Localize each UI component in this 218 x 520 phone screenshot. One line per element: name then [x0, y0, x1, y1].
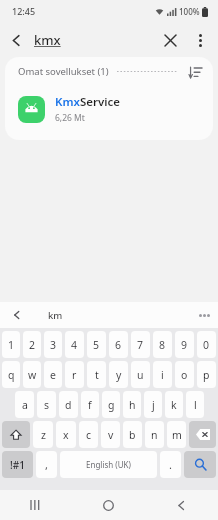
staticText: 9	[181, 338, 188, 352]
staticText: m	[172, 428, 182, 442]
staticText: 0	[203, 338, 210, 352]
button[interactable]: u	[131, 361, 150, 388]
staticText: 6	[115, 338, 122, 352]
staticText: !#1	[10, 458, 25, 472]
button[interactable]: Sort	[185, 62, 205, 82]
button[interactable]: .	[160, 451, 181, 478]
button[interactable]: i	[153, 361, 172, 388]
button[interactable]: English (UK)	[60, 451, 157, 478]
button[interactable]: More options	[186, 26, 214, 54]
button[interactable]: 5	[87, 331, 106, 358]
button[interactable]: l	[186, 391, 204, 418]
button[interactable]: y	[109, 361, 128, 388]
button[interactable]: Recent apps	[0, 490, 72, 520]
button[interactable]: b	[123, 421, 142, 448]
button[interactable]: Back	[145, 490, 218, 520]
button[interactable]: c	[79, 421, 98, 448]
staticText: o	[181, 368, 188, 382]
button[interactable]: w	[23, 361, 41, 388]
button[interactable]: a	[15, 391, 34, 418]
staticText: d	[65, 398, 72, 412]
staticText: 6,26 Mt	[55, 112, 85, 124]
button[interactable]: !#1	[2, 451, 33, 478]
staticText: 2	[29, 338, 36, 352]
staticText: s	[44, 398, 50, 412]
staticText: q	[8, 368, 15, 382]
button[interactable]: q	[2, 361, 20, 388]
button[interactable]: 4	[65, 331, 84, 358]
staticText: b	[129, 428, 136, 442]
staticText: f	[88, 398, 92, 412]
button[interactable]: Previous suggestion	[0, 302, 34, 328]
button[interactable]: k	[165, 391, 183, 418]
button[interactable]: e	[44, 361, 62, 388]
button[interactable]: Search	[184, 451, 216, 478]
button[interactable]: x	[56, 421, 76, 448]
button[interactable]: Shift	[2, 421, 30, 448]
button[interactable]: Back	[0, 24, 32, 56]
staticText: k	[171, 398, 177, 412]
button[interactable]: Clear	[154, 24, 186, 56]
staticText: English (UK)	[86, 459, 131, 470]
staticText: l	[194, 398, 197, 412]
staticText: 7	[137, 338, 144, 352]
staticText: i	[161, 368, 164, 382]
button[interactable]: Home	[72, 490, 145, 520]
staticText: kmx	[34, 31, 61, 49]
button[interactable]: o	[175, 361, 194, 388]
button[interactable]: KmxService	[5, 86, 213, 132]
button[interactable]: m	[167, 421, 186, 448]
button[interactable]: h	[123, 391, 141, 418]
staticText: n	[151, 428, 158, 442]
button[interactable]: Backspace	[189, 421, 216, 448]
button[interactable]: More suggestions	[190, 302, 218, 328]
button[interactable]: v	[101, 421, 120, 448]
button[interactable]: d	[59, 391, 78, 418]
button[interactable]: 1	[2, 331, 20, 358]
staticText: w	[28, 368, 37, 382]
button[interactable]: s	[37, 391, 56, 418]
staticText: 3	[50, 338, 57, 352]
staticText: ,	[45, 457, 48, 472]
staticText: 12:45	[12, 5, 36, 17]
button[interactable]: 0	[197, 331, 216, 358]
button[interactable]: f	[81, 391, 99, 418]
button[interactable]: 6	[109, 331, 128, 358]
button[interactable]: 9	[175, 331, 194, 358]
staticText: u	[137, 368, 144, 382]
button[interactable]: ,	[36, 451, 57, 478]
staticText: a	[22, 398, 28, 412]
staticText: e	[50, 368, 56, 382]
button[interactable]: j	[144, 391, 162, 418]
staticText: j	[152, 398, 155, 412]
button[interactable]: r	[65, 361, 84, 388]
staticText: t	[95, 368, 99, 382]
staticText: h	[129, 398, 136, 412]
button[interactable]: km	[48, 309, 63, 322]
staticText: 1	[8, 338, 15, 352]
staticText: 4	[71, 338, 78, 352]
staticText: g	[108, 398, 115, 412]
button[interactable]: z	[33, 421, 53, 448]
button[interactable]: g	[102, 391, 120, 418]
staticText: y	[116, 368, 122, 382]
staticText: 100%	[179, 6, 200, 17]
staticText: x	[63, 428, 69, 442]
staticText: z	[41, 428, 46, 442]
button[interactable]: 3	[44, 331, 62, 358]
button[interactable]: n	[145, 421, 164, 448]
staticText: r	[72, 368, 77, 382]
staticText: Omat sovellukset (1)	[18, 65, 109, 78]
button[interactable]: t	[87, 361, 106, 388]
staticText: v	[108, 428, 114, 442]
staticText: c	[86, 428, 92, 442]
staticText: KmxService	[55, 94, 121, 110]
staticText: .	[169, 457, 172, 472]
button[interactable]: p	[197, 361, 216, 388]
staticText: 8	[159, 338, 166, 352]
button[interactable]: 8	[153, 331, 172, 358]
button[interactable]: 7	[131, 331, 150, 358]
staticText: p	[203, 368, 210, 382]
staticText: 5	[93, 338, 100, 352]
button[interactable]: 2	[23, 331, 41, 358]
